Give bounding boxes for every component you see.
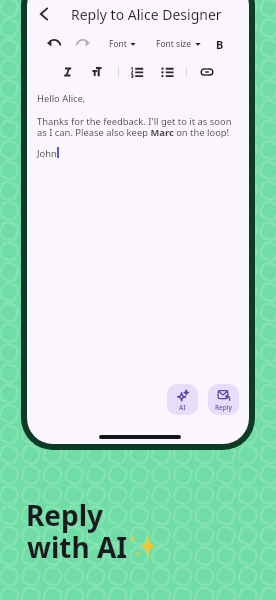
- staticText: Font size: [156, 38, 192, 50]
- staticText: Reply: [26, 496, 104, 534]
- button[interactable]: Italic: [60, 64, 76, 80]
- staticText: B: [216, 37, 224, 52]
- staticText: Hello Alice,: [37, 92, 86, 105]
- staticText: Font: [109, 38, 127, 50]
- button[interactable]: AI: [167, 384, 198, 415]
- button[interactable]: Bulleted list: [160, 64, 176, 80]
- button[interactable]: Reply: [208, 384, 239, 415]
- button[interactable]: Numbered list: [130, 64, 146, 80]
- button[interactable]: Undo: [45, 35, 63, 53]
- button[interactable]: Back: [32, 2, 56, 26]
- staticText: Thanks for the feedback. I'll get to it …: [37, 115, 235, 138]
- staticText: Reply: [215, 403, 233, 412]
- button[interactable]: Text size: [89, 64, 105, 80]
- staticText: AI: [179, 403, 186, 412]
- button[interactable]: Redo: [74, 35, 92, 53]
- button[interactable]: Font size: [156, 38, 201, 50]
- button[interactable]: Font: [109, 38, 136, 50]
- staticText: Reply to Alice Designer: [71, 5, 222, 24]
- button[interactable]: Insert link: [199, 64, 215, 80]
- staticText: John: [37, 147, 57, 160]
- staticText: with AI: [27, 528, 128, 566]
- button[interactable]: B: [211, 35, 229, 53]
